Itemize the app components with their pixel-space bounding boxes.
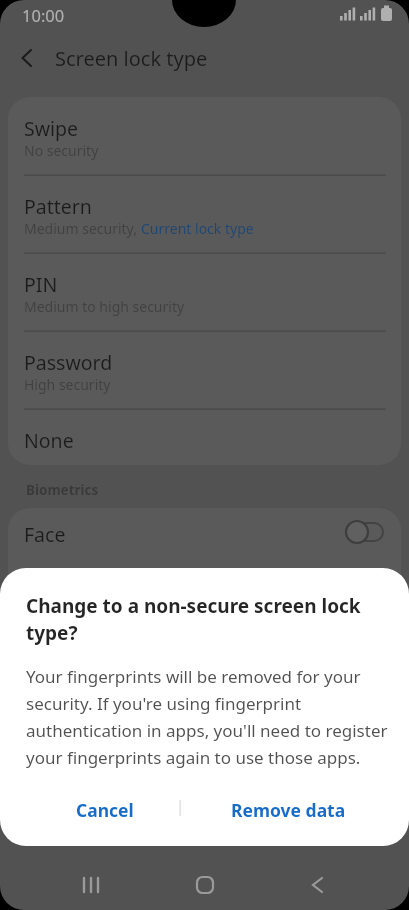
staticText: Swipe [24, 115, 79, 142]
staticText: Password [24, 349, 113, 376]
button[interactable] [8, 175, 401, 253]
staticText: Screen lock type [55, 45, 208, 72]
staticText: Face [24, 521, 66, 548]
button[interactable] [8, 253, 401, 331]
staticText: PIN [24, 271, 58, 298]
staticText: Cancel [76, 798, 134, 822]
staticText: No security [24, 141, 99, 160]
button[interactable] [66, 862, 116, 906]
staticText: Medium to high security [24, 297, 185, 316]
button[interactable] [8, 508, 401, 568]
staticText: High security [24, 375, 111, 394]
button[interactable] [8, 331, 401, 409]
staticText: 10:00 [22, 4, 65, 26]
button[interactable]: Remove data [226, 786, 346, 830]
button[interactable] [8, 409, 401, 465]
button[interactable] [14, 44, 44, 72]
button[interactable] [8, 97, 401, 175]
button[interactable] [180, 862, 230, 906]
staticText: Change to a non-secure screen lock type? [26, 593, 361, 646]
staticText: Medium security, [24, 219, 141, 238]
staticText: Pattern [24, 193, 92, 220]
staticText: Current lock type [141, 219, 254, 238]
staticText: None [24, 427, 74, 454]
button[interactable] [293, 862, 343, 906]
button[interactable]: Cancel [56, 786, 148, 830]
staticText: Your fingerprints will be removed for yo… [26, 665, 388, 769]
staticText: Biometrics [26, 481, 99, 499]
staticText: Remove data [231, 798, 346, 822]
